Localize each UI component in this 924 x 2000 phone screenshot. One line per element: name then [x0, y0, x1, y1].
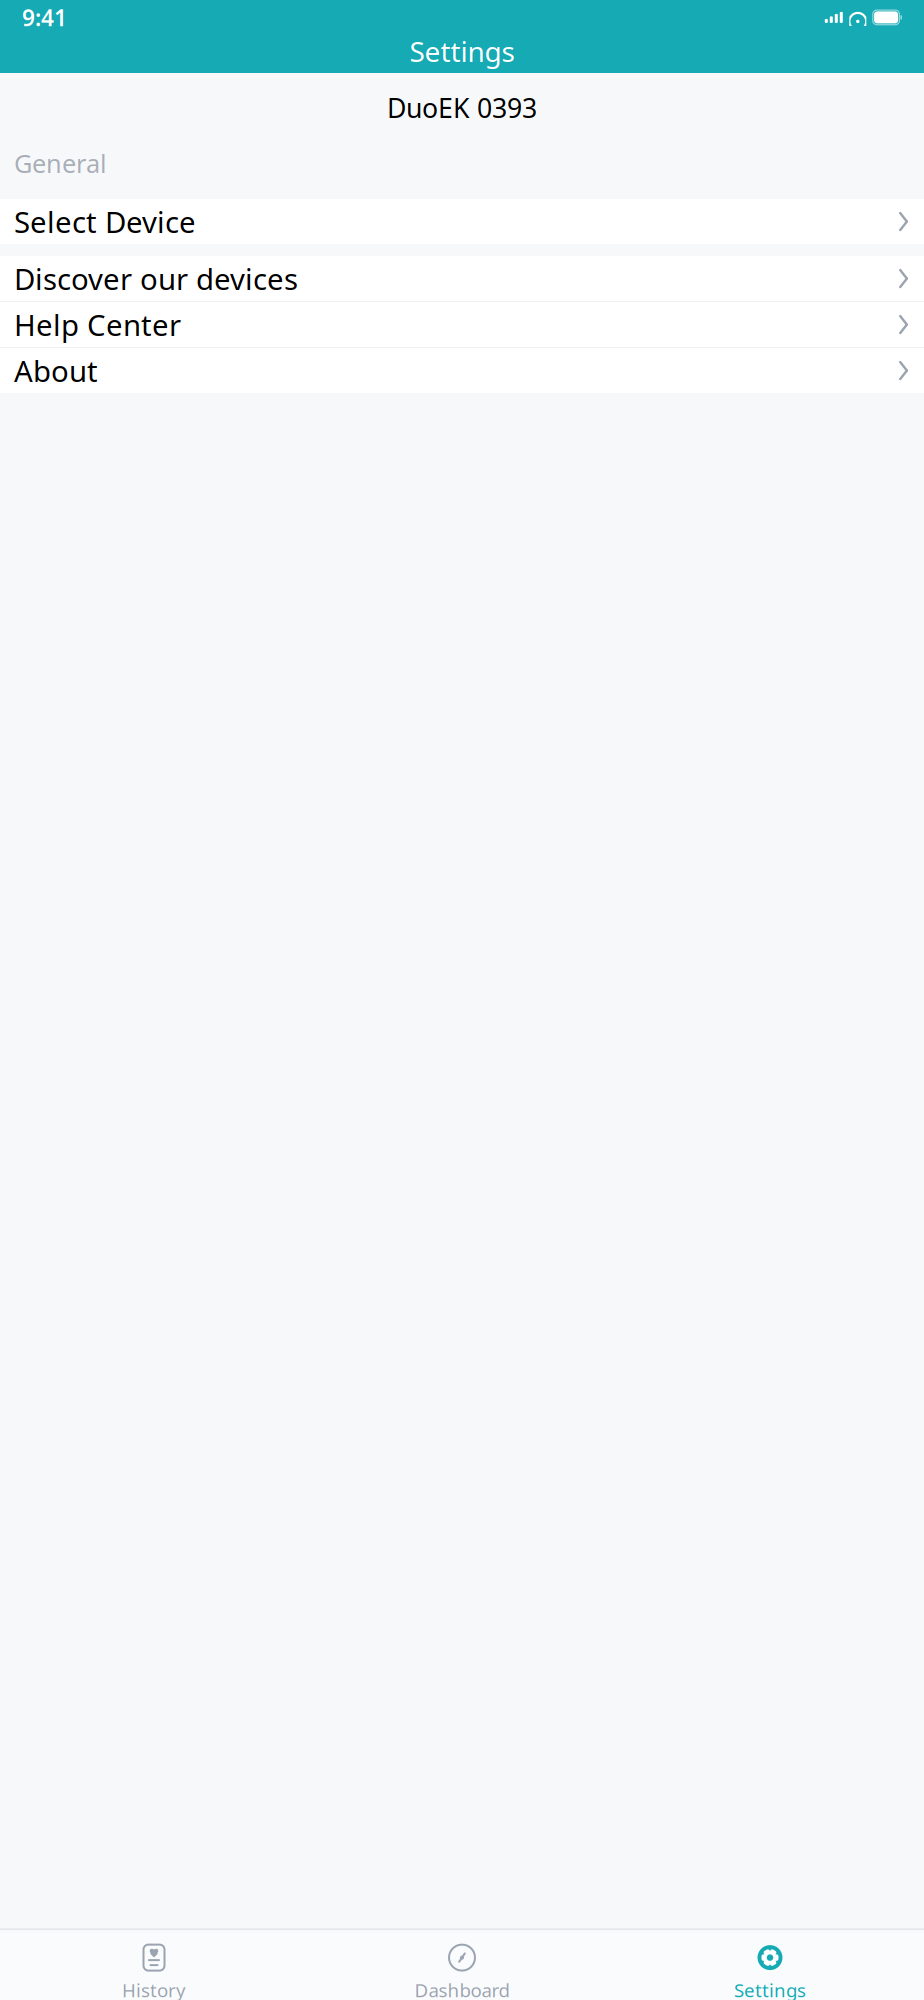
staticText: General — [14, 146, 107, 180]
staticText: History — [122, 1978, 186, 2000]
staticText: Dashboard — [414, 1978, 509, 2000]
button[interactable]: History — [0, 1942, 308, 2000]
staticText: Settings — [734, 1978, 806, 2000]
staticText: Select Device — [14, 202, 196, 241]
staticText: About — [14, 351, 98, 390]
button[interactable]: Discover our devices — [0, 256, 924, 301]
button[interactable]: Select Device — [0, 199, 924, 244]
staticText: DuoEK 0393 — [387, 90, 537, 125]
button[interactable]: Dashboard — [308, 1942, 616, 2000]
staticText: Discover our devices — [14, 259, 298, 298]
staticText: 9:41 — [22, 2, 67, 32]
button[interactable]: About — [0, 348, 924, 393]
button[interactable]: Settings — [616, 1942, 924, 2000]
staticText: Settings — [409, 32, 514, 70]
staticText: Help Center — [14, 305, 181, 344]
button[interactable]: Help Center — [0, 302, 924, 347]
